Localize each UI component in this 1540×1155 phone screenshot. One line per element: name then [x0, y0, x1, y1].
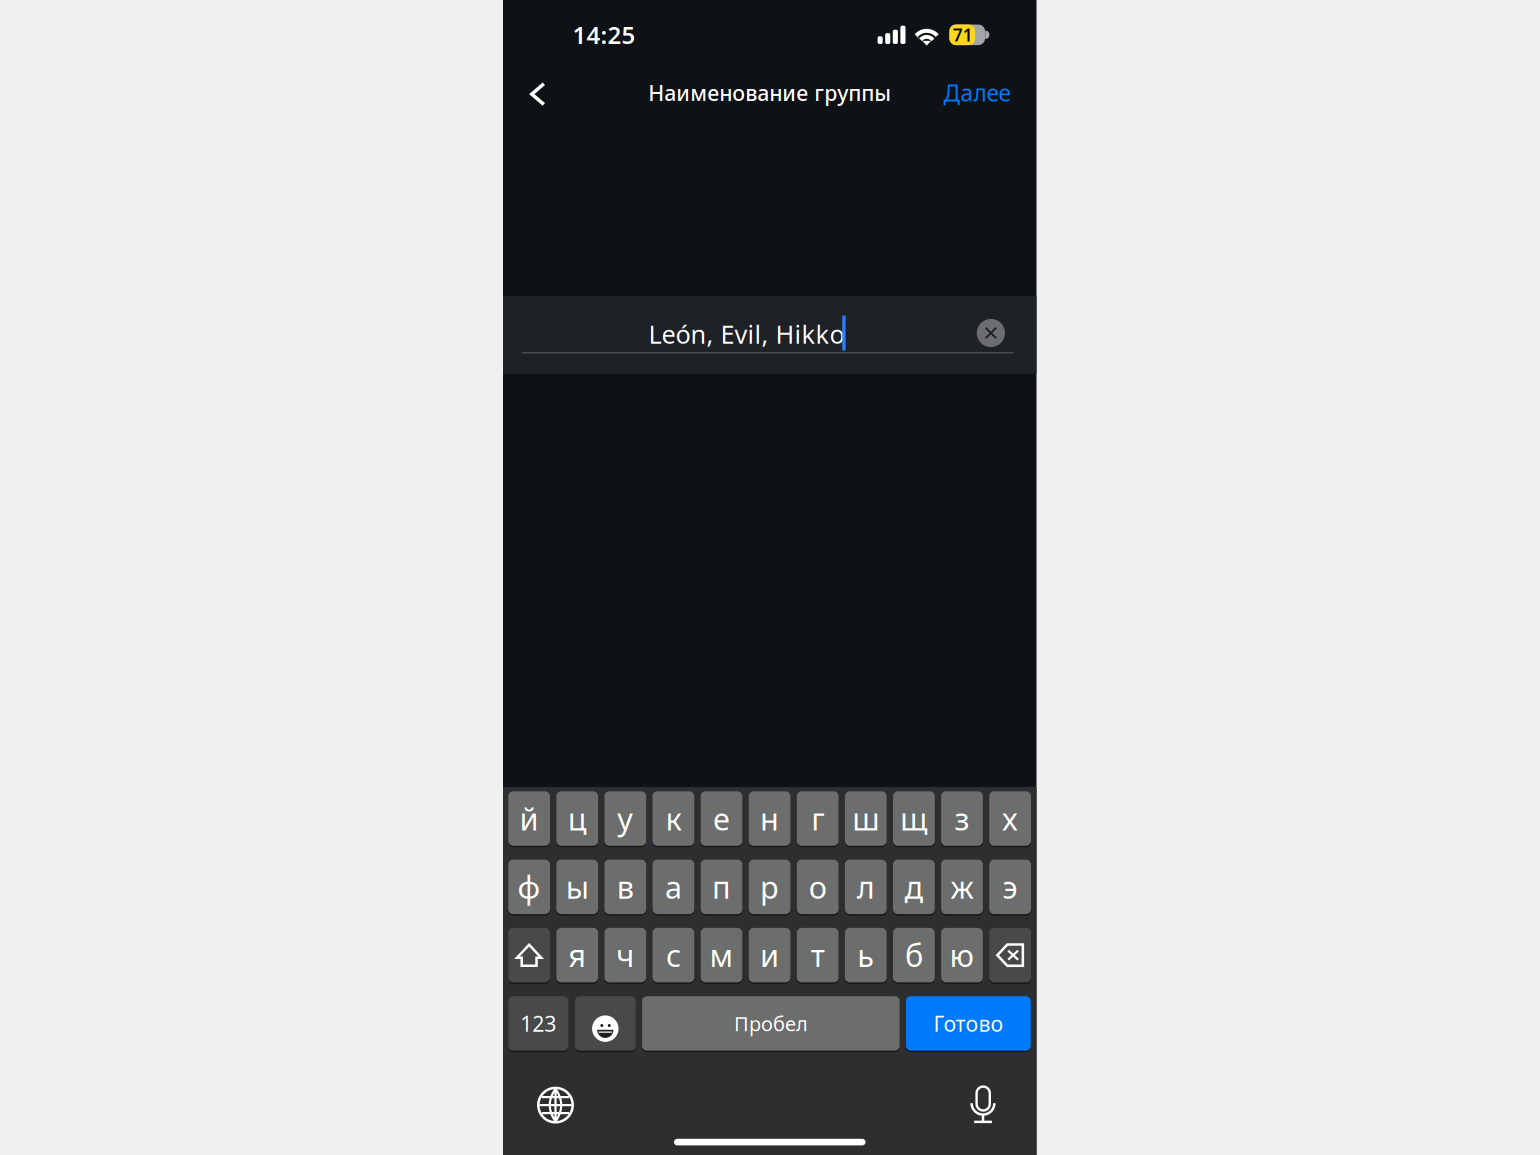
button[interactable]: г — [797, 791, 839, 846]
staticText: м — [709, 935, 733, 975]
staticText: к — [665, 798, 681, 839]
staticText: г — [811, 798, 824, 839]
button[interactable]: б — [893, 928, 935, 982]
staticText: з — [954, 798, 969, 839]
button[interactable]: й — [508, 791, 550, 846]
button[interactable]: ф — [508, 860, 550, 914]
button[interactable]: 123 — [508, 996, 568, 1051]
button[interactable]: и — [749, 928, 790, 982]
button[interactable]: ц — [556, 791, 598, 846]
staticText: о — [809, 866, 827, 907]
button[interactable]: Shift — [508, 928, 550, 982]
button[interactable]: щ — [893, 791, 935, 846]
button[interactable]: д — [893, 860, 935, 914]
button[interactable]: э — [989, 860, 1031, 914]
staticText: ы — [566, 866, 589, 907]
button[interactable]: Clear text — [974, 316, 1008, 350]
staticText: ф — [518, 866, 541, 907]
button[interactable]: о — [797, 860, 839, 914]
button[interactable]: ш — [845, 791, 887, 846]
staticText: с — [666, 935, 681, 975]
staticText: е — [713, 798, 730, 839]
staticText: ц — [568, 798, 587, 839]
button[interactable]: ч — [604, 928, 646, 982]
button[interactable]: Group name — [522, 310, 1014, 358]
button[interactable]: Switch keyboard — [538, 1088, 573, 1122]
staticText: н — [760, 798, 779, 839]
staticText: т — [811, 935, 825, 975]
button[interactable]: Dictate — [970, 1087, 996, 1124]
staticText: Наименование группы — [648, 79, 891, 107]
staticText: 123 — [520, 1009, 556, 1038]
button[interactable]: ь — [845, 928, 887, 982]
button[interactable]: я — [556, 928, 598, 982]
button[interactable]: Пробел — [642, 996, 900, 1051]
button[interactable]: Emoji — [575, 996, 636, 1051]
button[interactable]: Delete — [989, 928, 1031, 982]
button[interactable]: т — [797, 928, 839, 982]
staticText: и — [760, 935, 779, 975]
button[interactable]: Далее — [932, 70, 1022, 116]
button[interactable]: а — [652, 860, 694, 914]
staticText: щ — [900, 798, 928, 839]
staticText: л — [857, 866, 875, 907]
staticText: я — [568, 935, 586, 975]
staticText: 71 — [953, 23, 973, 46]
staticText: León, Evil, Hikko — [648, 317, 844, 351]
staticText: а — [665, 866, 682, 907]
staticText: ж — [950, 866, 973, 907]
button[interactable]: р — [749, 860, 790, 914]
button[interactable]: к — [652, 791, 694, 846]
button[interactable]: ю — [941, 928, 983, 982]
staticText: п — [712, 866, 731, 907]
button[interactable]: п — [701, 860, 742, 914]
staticText: в — [617, 866, 634, 907]
staticText: д — [904, 866, 923, 907]
staticText: Далее — [943, 78, 1010, 108]
button[interactable]: Готово — [906, 996, 1031, 1051]
button[interactable]: в — [604, 860, 646, 914]
button[interactable]: м — [701, 928, 742, 982]
staticText: ю — [949, 935, 974, 975]
button[interactable]: ж — [941, 860, 983, 914]
staticText: ь — [857, 935, 874, 975]
button[interactable]: у — [604, 791, 646, 846]
staticText: Пробел — [734, 1010, 808, 1037]
button[interactable]: Back — [518, 70, 558, 118]
staticText: б — [905, 935, 923, 975]
button[interactable]: х — [989, 791, 1031, 846]
button[interactable]: е — [701, 791, 742, 846]
button[interactable]: н — [749, 791, 790, 846]
staticText: у — [617, 798, 633, 839]
staticText: х — [1002, 798, 1018, 839]
button[interactable]: с — [652, 928, 694, 982]
staticText: р — [760, 866, 779, 907]
button[interactable]: ы — [556, 860, 598, 914]
button[interactable]: л — [845, 860, 887, 914]
staticText: ч — [616, 935, 634, 975]
staticText: й — [520, 798, 539, 839]
staticText: Готово — [933, 1009, 1003, 1038]
staticText: э — [1003, 866, 1018, 907]
staticText: 14:25 — [572, 19, 635, 51]
staticText: ш — [852, 798, 879, 839]
button[interactable]: з — [941, 791, 983, 846]
